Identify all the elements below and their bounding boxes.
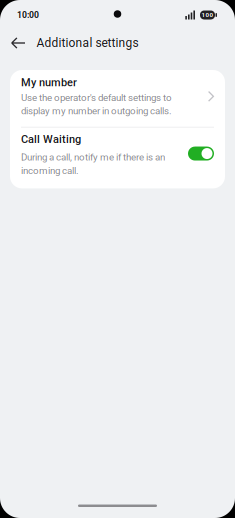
staticText: During a call, notify me if there is an … bbox=[21, 152, 165, 176]
staticText: 100 bbox=[201, 11, 213, 19]
staticText: Call Waiting bbox=[21, 133, 81, 146]
button[interactable]: My number bbox=[10, 70, 225, 127]
staticText: 10:00 bbox=[17, 10, 39, 20]
staticText: Use the operator's default settings to d… bbox=[21, 92, 172, 117]
staticText: My number bbox=[21, 76, 77, 89]
staticText: Additional settings bbox=[36, 36, 138, 50]
button[interactable]: Call Waiting bbox=[10, 128, 225, 188]
button[interactable]: Call Waiting on bbox=[188, 147, 214, 161]
button[interactable]: Back bbox=[0, 38, 36, 48]
